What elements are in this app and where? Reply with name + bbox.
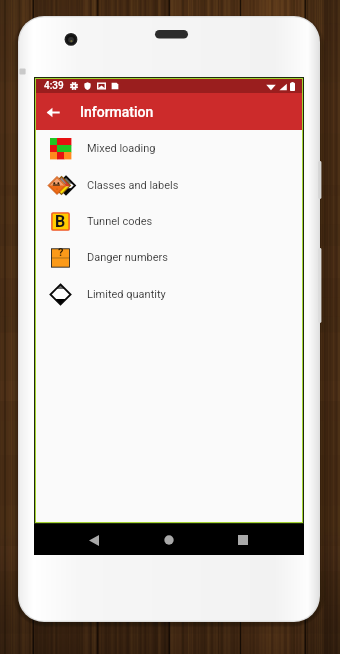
button[interactable]: B	[36, 203, 302, 239]
button[interactable]: Navigate up	[39, 98, 67, 126]
staticText: Classes and labels	[87, 179, 179, 192]
staticText: Information	[80, 104, 154, 120]
button[interactable]: Mixed loading	[36, 130, 302, 166]
staticText: Danger numbers	[87, 251, 168, 264]
button[interactable]: Home	[155, 524, 183, 555]
button[interactable]: Back	[80, 524, 108, 555]
staticText: Limited quantity	[87, 288, 166, 301]
staticText: Tunnel codes	[87, 215, 153, 228]
button[interactable]: Classes and labels	[36, 167, 302, 203]
staticText: Mixed loading	[87, 142, 156, 155]
staticText: 4:39	[44, 80, 64, 92]
staticText: B	[55, 212, 66, 231]
button[interactable]: Recent apps	[229, 524, 257, 555]
button[interactable]: ?	[36, 239, 302, 275]
staticText: ?	[58, 246, 64, 259]
button[interactable]: Limited quantity	[36, 276, 302, 312]
